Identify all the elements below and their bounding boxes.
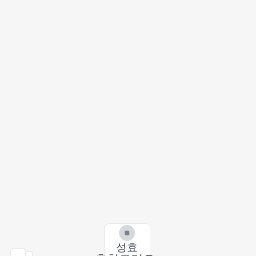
button[interactable]: Recommended person xyxy=(25,251,33,256)
staticText: 성효 xyxy=(116,241,138,254)
button[interactable]: Recommended person xyxy=(10,248,27,256)
button[interactable]: 성효 추천드려요 xyxy=(104,223,151,256)
staticText: 추천드려요 xyxy=(95,252,155,256)
